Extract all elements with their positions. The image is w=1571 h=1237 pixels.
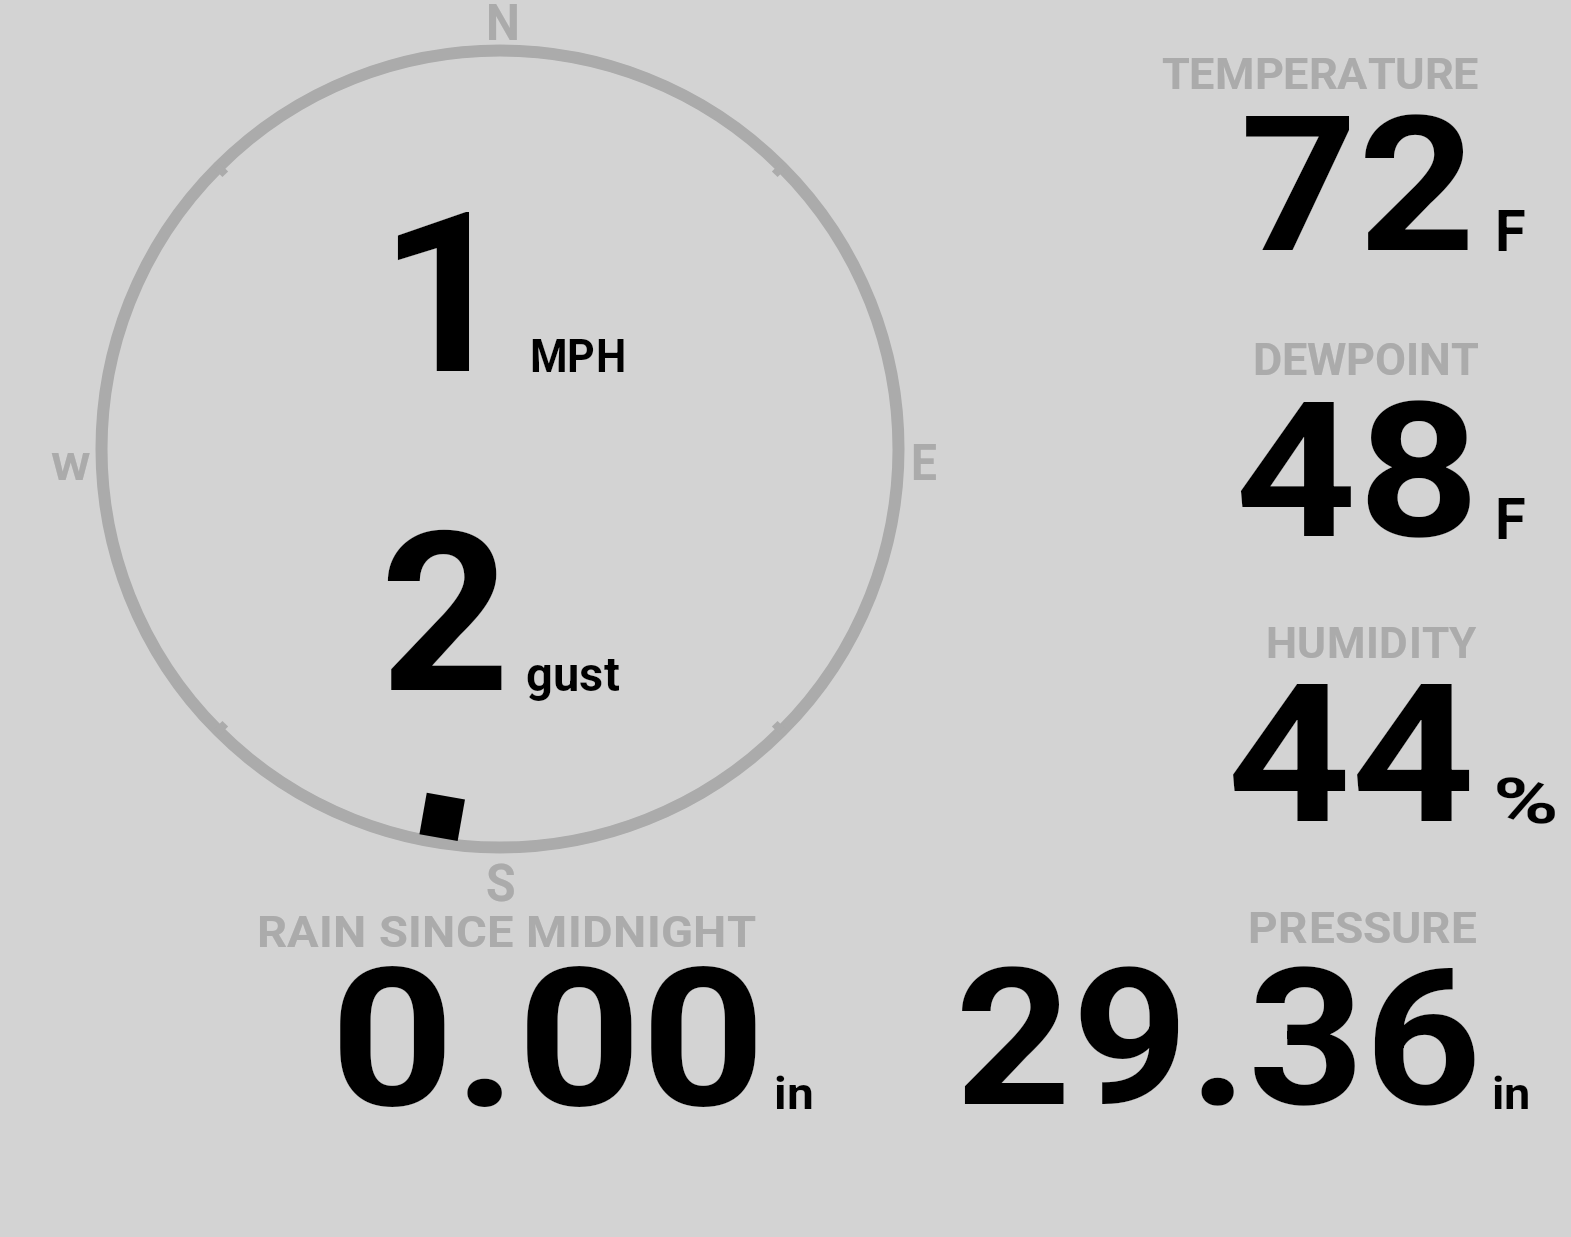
button[interactable]: Pressure 29.36 in [940, 900, 1550, 1125]
button[interactable]: Rain since midnight 0.00 in [240, 900, 830, 1125]
button[interactable]: Temperature 72 F [1140, 40, 1560, 265]
button[interactable]: Dewpoint 48 F [1140, 325, 1560, 550]
button[interactable]: Wind: 1 MPH, gusting 2, from the south-s… [96, 45, 904, 853]
button[interactable]: Humidity 44 % [1140, 610, 1570, 835]
